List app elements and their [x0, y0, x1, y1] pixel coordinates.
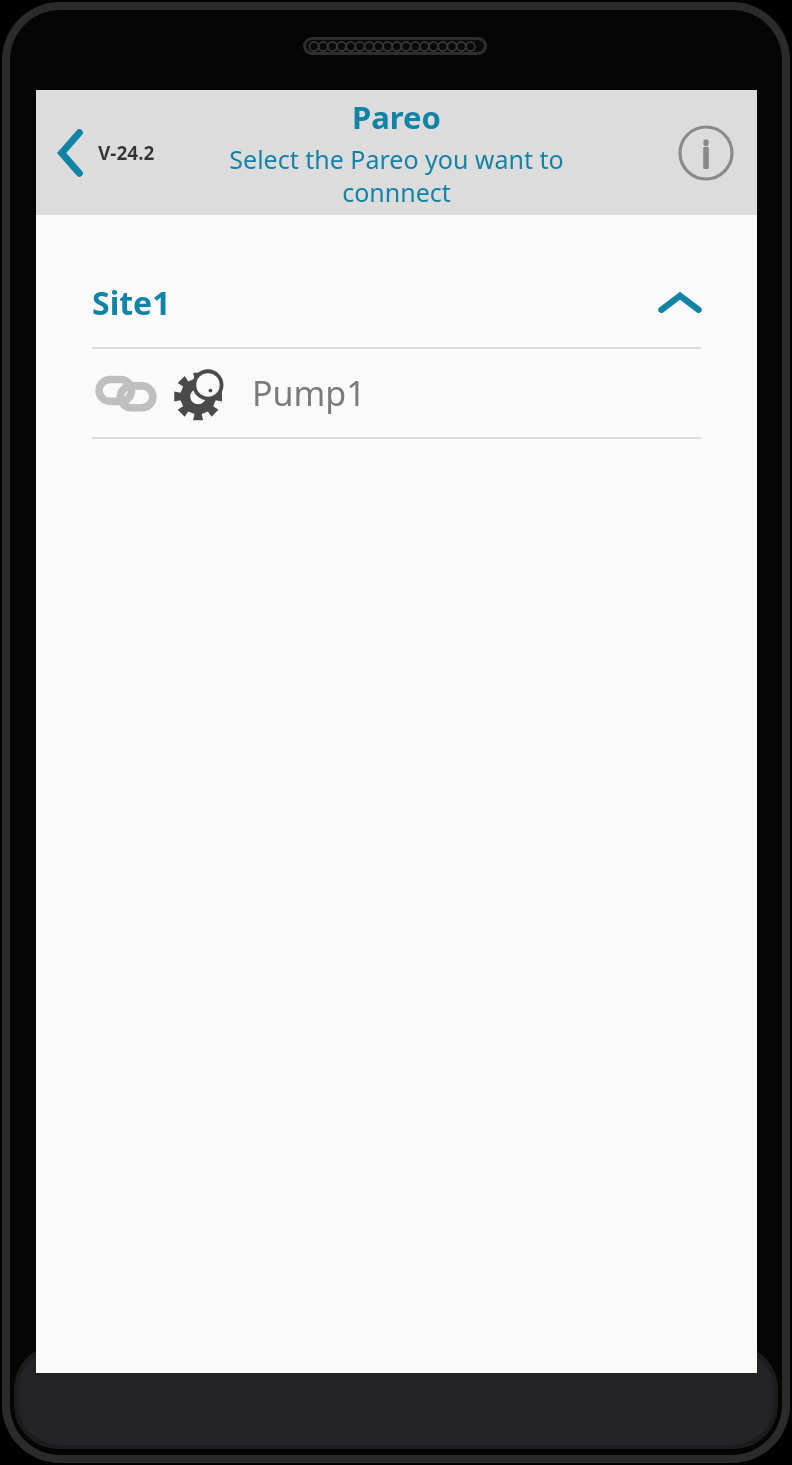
staticText: Pump1	[252, 370, 366, 416]
button[interactable]: Back	[50, 120, 163, 186]
other: Link status	[98, 372, 154, 414]
button[interactable]: Link status	[36, 349, 757, 437]
staticText: Select the Pareo you want to connnect	[173, 142, 620, 209]
button[interactable]: Site1	[92, 275, 701, 331]
button[interactable]: Information	[673, 120, 739, 186]
staticText: Site1	[92, 281, 171, 325]
staticText: V-24.2	[98, 140, 155, 166]
staticText: Pareo	[352, 96, 441, 138]
